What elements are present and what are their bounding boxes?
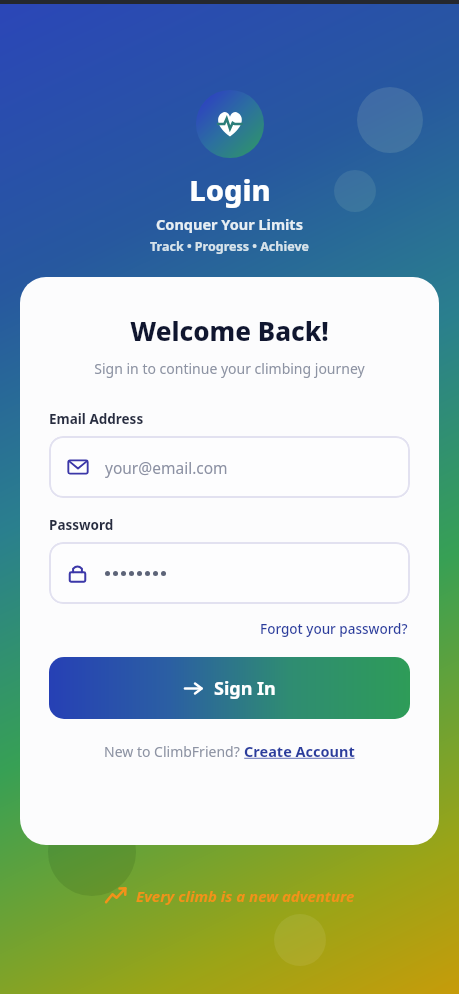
staticText: Forgot your password? — [260, 620, 408, 638]
staticText: Login — [189, 170, 271, 209]
other: ClimbFriend logo — [215, 109, 245, 139]
staticText: your@email.com — [105, 457, 228, 478]
button[interactable]: Create Account — [244, 741, 355, 761]
staticText: Every climb is a new adventure — [136, 886, 355, 906]
staticText: Welcome Back! — [49, 313, 410, 348]
button[interactable]: Password — [49, 542, 410, 604]
staticText: Email Address — [49, 410, 144, 428]
staticText: Sign In — [214, 676, 276, 701]
other: Email — [67, 456, 89, 478]
staticText: Password — [49, 516, 114, 534]
staticText: New to ClimbFriend? — [104, 742, 244, 761]
other: Password — [67, 563, 88, 584]
staticText: Create Account — [244, 741, 355, 761]
button[interactable]: Forgot your password? — [258, 618, 410, 640]
staticText: Conquer Your Limits — [156, 214, 303, 234]
button[interactable]: Email — [49, 436, 410, 498]
staticText: Track • Progress • Achieve — [150, 238, 309, 255]
button[interactable]: Sign In — [49, 657, 410, 719]
other: Trending up — [105, 885, 127, 907]
staticText: Sign in to continue your climbing journe… — [49, 359, 410, 378]
